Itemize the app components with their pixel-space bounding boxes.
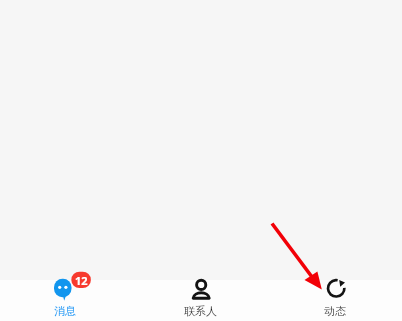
staticText: 消息: [54, 304, 76, 318]
other: 消息: [53, 275, 81, 303]
other: 动态: [321, 275, 349, 303]
staticText: 动态: [324, 304, 346, 318]
staticText: 12: [75, 273, 88, 288]
button[interactable]: 联系人: [134, 275, 268, 321]
button[interactable]: 消息: [0, 275, 134, 321]
button[interactable]: 动态: [268, 275, 402, 321]
other: 联系人: [187, 275, 215, 303]
staticText: 联系人: [184, 304, 217, 318]
